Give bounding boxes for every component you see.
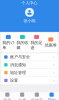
button[interactable]: 首页 xyxy=(0,93,15,100)
button[interactable]: 我的足迹 xyxy=(29,35,44,50)
staticText: > xyxy=(53,70,55,75)
button[interactable]: 我的 xyxy=(44,93,59,100)
button[interactable]: 地址管理 xyxy=(1,69,58,77)
staticText: > xyxy=(53,62,55,67)
staticText: > xyxy=(53,54,55,60)
staticText: 优惠券 xyxy=(45,43,57,48)
button[interactable]: 分类 xyxy=(15,93,30,100)
button[interactable]: 优惠券 xyxy=(44,37,58,48)
staticText: 我的订单 xyxy=(2,40,14,50)
button[interactable]: 购物车 xyxy=(29,93,44,100)
staticText: > xyxy=(53,78,55,83)
staticText: 张小明 xyxy=(23,18,35,23)
button[interactable]: 账户与安全 xyxy=(1,53,58,61)
staticText: 购物车 xyxy=(31,98,43,100)
staticText: 地址管理 xyxy=(10,70,26,75)
staticText: 个人中心 xyxy=(21,0,37,5)
button[interactable]: 消息通知 xyxy=(1,61,58,69)
staticText: 首页 xyxy=(3,98,11,100)
staticText: 设置 xyxy=(10,78,18,83)
staticText: 我的收藏 xyxy=(16,40,28,50)
button[interactable]: 我的订单 xyxy=(1,35,15,50)
staticText: 分类 xyxy=(18,98,26,100)
button[interactable]: 我的收藏 xyxy=(15,35,29,50)
staticText: 我的 xyxy=(48,98,56,100)
staticText: 我的足迹 xyxy=(31,40,43,50)
button[interactable]: 设置 xyxy=(1,77,58,84)
staticText: 消息通知 xyxy=(10,62,26,67)
staticText: 账户与安全 xyxy=(10,55,30,59)
